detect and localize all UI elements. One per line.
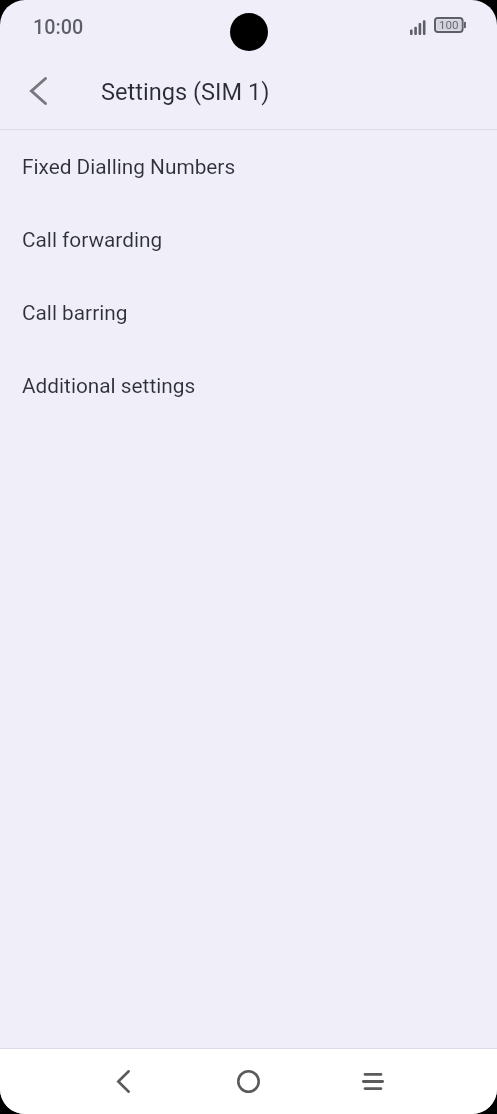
- button[interactable]: Back: [81, 1049, 165, 1114]
- button[interactable]: Call barring: [0, 276, 497, 349]
- staticText: Call forwarding: [22, 228, 163, 252]
- button[interactable]: Recent apps: [331, 1049, 415, 1114]
- button[interactable]: Call forwarding: [0, 203, 497, 276]
- staticText: 10:00: [33, 16, 84, 39]
- button[interactable]: Home: [206, 1049, 290, 1114]
- button[interactable]: Fixed Dialling Numbers: [0, 130, 497, 203]
- staticText: Additional settings: [22, 374, 196, 398]
- staticText: Settings (SIM 1): [101, 78, 270, 106]
- button[interactable]: Back: [14, 67, 62, 115]
- staticText: Call barring: [22, 301, 128, 325]
- staticText: 100: [439, 18, 459, 32]
- button[interactable]: Additional settings: [0, 349, 497, 422]
- staticText: Fixed Dialling Numbers: [22, 155, 236, 179]
